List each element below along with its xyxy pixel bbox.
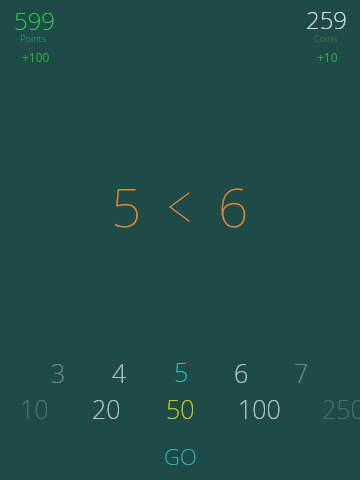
button[interactable]: 3	[39, 352, 87, 382]
staticText: 6	[234, 356, 249, 386]
staticText: Coins	[314, 32, 338, 45]
button[interactable]: GO	[150, 436, 210, 468]
button[interactable]: 7	[282, 352, 330, 382]
button[interactable]: 20	[80, 388, 128, 418]
button[interactable]: 10	[8, 388, 56, 418]
staticText: 250	[322, 392, 360, 422]
button[interactable]: Coins: 259, plus 10	[300, 1, 356, 67]
button[interactable]: Points: 599, plus 100	[8, 1, 68, 67]
staticText: +10	[317, 49, 338, 65]
staticText: 5	[174, 355, 189, 385]
staticText: 10	[20, 392, 49, 422]
button[interactable]: 5	[162, 351, 210, 381]
staticText: 100	[238, 392, 281, 422]
button[interactable]: 6	[222, 352, 270, 382]
staticText: 5	[111, 170, 142, 242]
staticText: 50	[166, 392, 195, 422]
other: less than	[170, 193, 189, 221]
staticText: 4	[112, 356, 127, 386]
staticText: 20	[92, 392, 121, 422]
button[interactable]: 50	[154, 388, 202, 418]
staticText: 259	[306, 3, 348, 36]
staticText: +100	[22, 49, 50, 65]
staticText: 599	[14, 4, 56, 37]
button[interactable]: 4	[100, 352, 148, 382]
staticText: Points	[20, 32, 47, 45]
button[interactable]: 100	[226, 388, 274, 418]
button[interactable]: 250	[310, 388, 358, 418]
staticText: 7	[294, 356, 309, 386]
staticText: 6	[218, 170, 249, 242]
staticText: GO	[164, 441, 197, 471]
staticText: 3	[51, 356, 66, 386]
